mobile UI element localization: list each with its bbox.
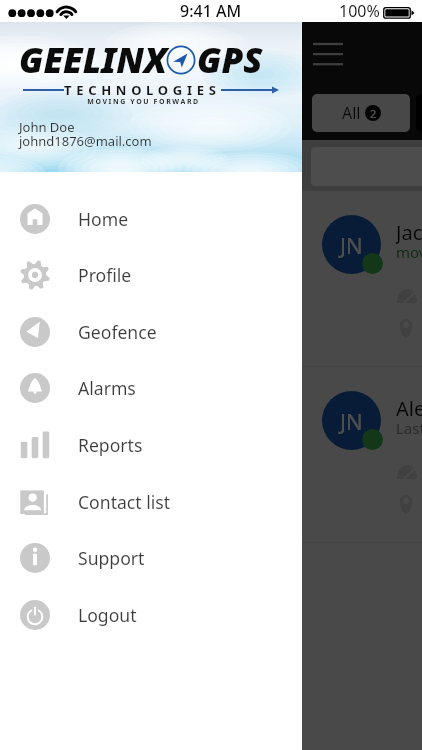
- staticText: John Doe: [19, 118, 75, 136]
- staticText: Logout: [78, 603, 137, 627]
- button[interactable]: Contact list: [0, 474, 302, 530]
- button[interactable]: Open navigation drawer: [313, 42, 343, 67]
- staticText: All: [342, 102, 361, 124]
- staticText: Home: [78, 207, 129, 231]
- button[interactable]: Profile: [0, 247, 302, 303]
- staticText: 2: [370, 106, 377, 121]
- staticText: 9:41 AM: [180, 0, 242, 22]
- button[interactable]: Geofence: [0, 304, 302, 360]
- staticText: GPS: [197, 36, 263, 84]
- button[interactable]: Alarms: [0, 360, 302, 416]
- staticText: Contact list: [78, 490, 171, 514]
- staticText: Last seen 2h ago: [396, 418, 422, 438]
- staticText: Support: [78, 546, 145, 570]
- staticText: Alexander Smith: [396, 395, 422, 422]
- staticText: TECHNOLOGIES: [64, 81, 221, 99]
- staticText: Geofence: [78, 320, 157, 344]
- staticText: Alarms: [78, 376, 136, 400]
- staticText: Reports: [78, 433, 143, 457]
- button[interactable]: Home: [0, 191, 302, 247]
- staticText: moving: [396, 242, 422, 262]
- staticText: Jackson Nolan: [396, 219, 422, 246]
- staticText: GEELINX: [19, 36, 167, 84]
- staticText: Profile: [78, 263, 132, 287]
- staticText: johnd1876@mail.com: [19, 132, 152, 150]
- button[interactable]: All: [312, 94, 410, 132]
- staticText: MOVING YOU FORWARD: [19, 97, 268, 107]
- button[interactable]: JN: [0, 367, 422, 543]
- staticText: JN: [340, 230, 363, 260]
- button[interactable]: Reports: [0, 417, 302, 473]
- staticText: JN: [340, 406, 363, 436]
- button[interactable]: Support: [0, 530, 302, 586]
- staticText: 100%: [339, 0, 380, 22]
- button[interactable]: JN: [0, 191, 422, 367]
- button[interactable]: Logout: [0, 587, 302, 643]
